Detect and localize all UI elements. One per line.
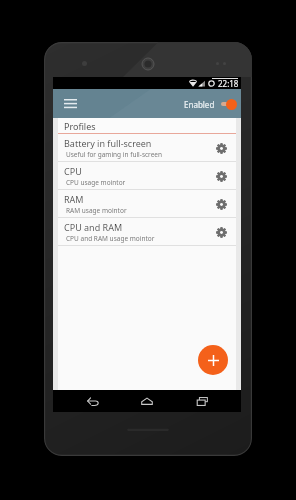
button[interactable]: Home [132, 390, 162, 412]
button[interactable]: CPU and RAM [58, 218, 236, 245]
button[interactable]: Battery in full-screen [58, 134, 236, 161]
button[interactable]: Recent apps [187, 390, 217, 412]
staticText: Enabled [184, 99, 215, 110]
staticText: CPU [64, 165, 82, 177]
button[interactable]: Settings for RAM [211, 194, 231, 214]
staticText: 22:18 [218, 78, 239, 89]
staticText: CPU and RAM [64, 221, 123, 233]
button[interactable]: Back [78, 390, 108, 412]
button[interactable]: Settings for CPU [211, 166, 231, 186]
button[interactable]: CPU [58, 162, 236, 189]
staticText: Battery in full-screen [64, 137, 152, 149]
button[interactable]: Enabled [184, 98, 237, 110]
button[interactable]: Settings for Battery in full-screen [211, 138, 231, 158]
button[interactable]: Open navigation menu [59, 93, 81, 115]
button[interactable]: Settings for CPU and RAM [211, 222, 231, 242]
button[interactable]: RAM [58, 190, 236, 217]
button[interactable]: Add profile [198, 345, 228, 375]
staticText: CPU and RAM usage mointor [66, 234, 155, 243]
staticText: RAM usage mointor [66, 206, 127, 215]
staticText: Useful for gaming in full-screen [66, 150, 163, 159]
staticText: RAM [64, 193, 84, 205]
staticText: Profiles [64, 120, 96, 132]
staticText: CPU usage mointor [66, 178, 126, 187]
